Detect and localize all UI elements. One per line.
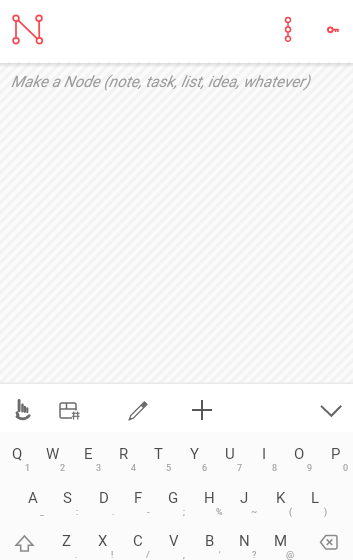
button[interactable]: T (141, 432, 176, 476)
button[interactable]: M (263, 519, 298, 560)
staticText: L (311, 489, 320, 507)
button[interactable] (2, 519, 46, 559)
staticText: U (225, 445, 235, 463)
staticText: P (331, 445, 341, 463)
staticText: V (169, 532, 179, 550)
staticText: C (133, 532, 143, 550)
staticText: ~ (251, 507, 258, 518)
button[interactable]: O (282, 432, 317, 476)
button[interactable]: Z (49, 519, 84, 560)
button[interactable] (6, 6, 50, 54)
staticText: % (216, 507, 223, 518)
button[interactable]: Q (0, 432, 35, 476)
staticText: ) (324, 507, 328, 518)
button[interactable]: N (227, 519, 262, 560)
staticText: 5 (166, 463, 172, 474)
staticText: D (99, 489, 109, 507)
staticText: Q (12, 445, 23, 463)
button[interactable]: A (15, 476, 50, 520)
staticText: 7 (237, 463, 243, 474)
staticText: ? (252, 550, 257, 560)
button[interactable]: R (106, 432, 141, 476)
staticText: N (239, 532, 250, 550)
button[interactable]: I (247, 432, 282, 476)
button[interactable]: S (50, 476, 85, 520)
button[interactable]: Y (177, 432, 212, 476)
button[interactable]: E (71, 432, 106, 476)
button[interactable]: V (156, 519, 191, 560)
button[interactable]: K (263, 476, 298, 520)
staticText: - (147, 507, 150, 518)
staticText: Z (62, 532, 71, 550)
staticText: X (98, 532, 108, 550)
button[interactable]: P (318, 432, 353, 476)
staticText: Y (190, 445, 200, 463)
staticText: ( (289, 507, 293, 518)
button[interactable] (311, 386, 351, 430)
staticText: / (146, 550, 150, 560)
staticText: A (28, 489, 38, 507)
staticText: , (183, 550, 185, 560)
staticText: T (154, 445, 163, 463)
staticText: . (75, 550, 78, 560)
button[interactable]: X (85, 519, 120, 560)
button[interactable] (274, 8, 302, 54)
button[interactable] (306, 519, 352, 559)
button[interactable]: Make a Node (note, task, list, idea, wha… (0, 63, 353, 103)
staticText: M (274, 532, 288, 550)
staticText: E (84, 445, 93, 463)
staticText: 1 (25, 463, 31, 474)
button[interactable]: B (192, 519, 227, 560)
staticText: ; (183, 507, 185, 518)
staticText: I (262, 445, 267, 463)
button[interactable] (316, 14, 348, 46)
button[interactable]: W (35, 432, 70, 476)
staticText: S (63, 489, 72, 507)
staticText: 4 (131, 463, 137, 474)
button[interactable]: D (86, 476, 121, 520)
staticText: 0 (343, 463, 349, 474)
staticText: 6 (202, 463, 208, 474)
staticText: ! (111, 550, 114, 560)
staticText: G (168, 489, 179, 507)
staticText: . (112, 507, 115, 518)
button[interactable] (116, 386, 156, 430)
staticText: 2 (60, 463, 66, 474)
button[interactable]: C (120, 519, 155, 560)
staticText: 9 (307, 463, 313, 474)
staticText: Make a Node (note, task, list, idea, wha… (11, 73, 310, 91)
staticText: W (46, 445, 60, 463)
staticText: H (204, 489, 215, 507)
button[interactable] (182, 386, 222, 430)
staticText: 8 (272, 463, 278, 474)
button[interactable]: L (298, 476, 333, 520)
staticText: R (119, 445, 129, 463)
staticText: B (205, 532, 215, 550)
staticText: _ (40, 507, 45, 518)
button[interactable]: U (212, 432, 247, 476)
button[interactable] (49, 391, 89, 433)
staticText: : (76, 507, 79, 518)
staticText: ' (219, 550, 221, 560)
staticText: K (276, 489, 286, 507)
staticText: O (294, 445, 305, 463)
button[interactable] (3, 386, 43, 430)
staticText: F (134, 489, 143, 507)
staticText: J (240, 489, 249, 507)
button[interactable]: H (192, 476, 227, 520)
staticText: @ (286, 550, 295, 560)
button[interactable]: F (121, 476, 156, 520)
button[interactable]: G (156, 476, 191, 520)
button[interactable]: J (227, 476, 262, 520)
staticText: 3 (96, 463, 102, 474)
